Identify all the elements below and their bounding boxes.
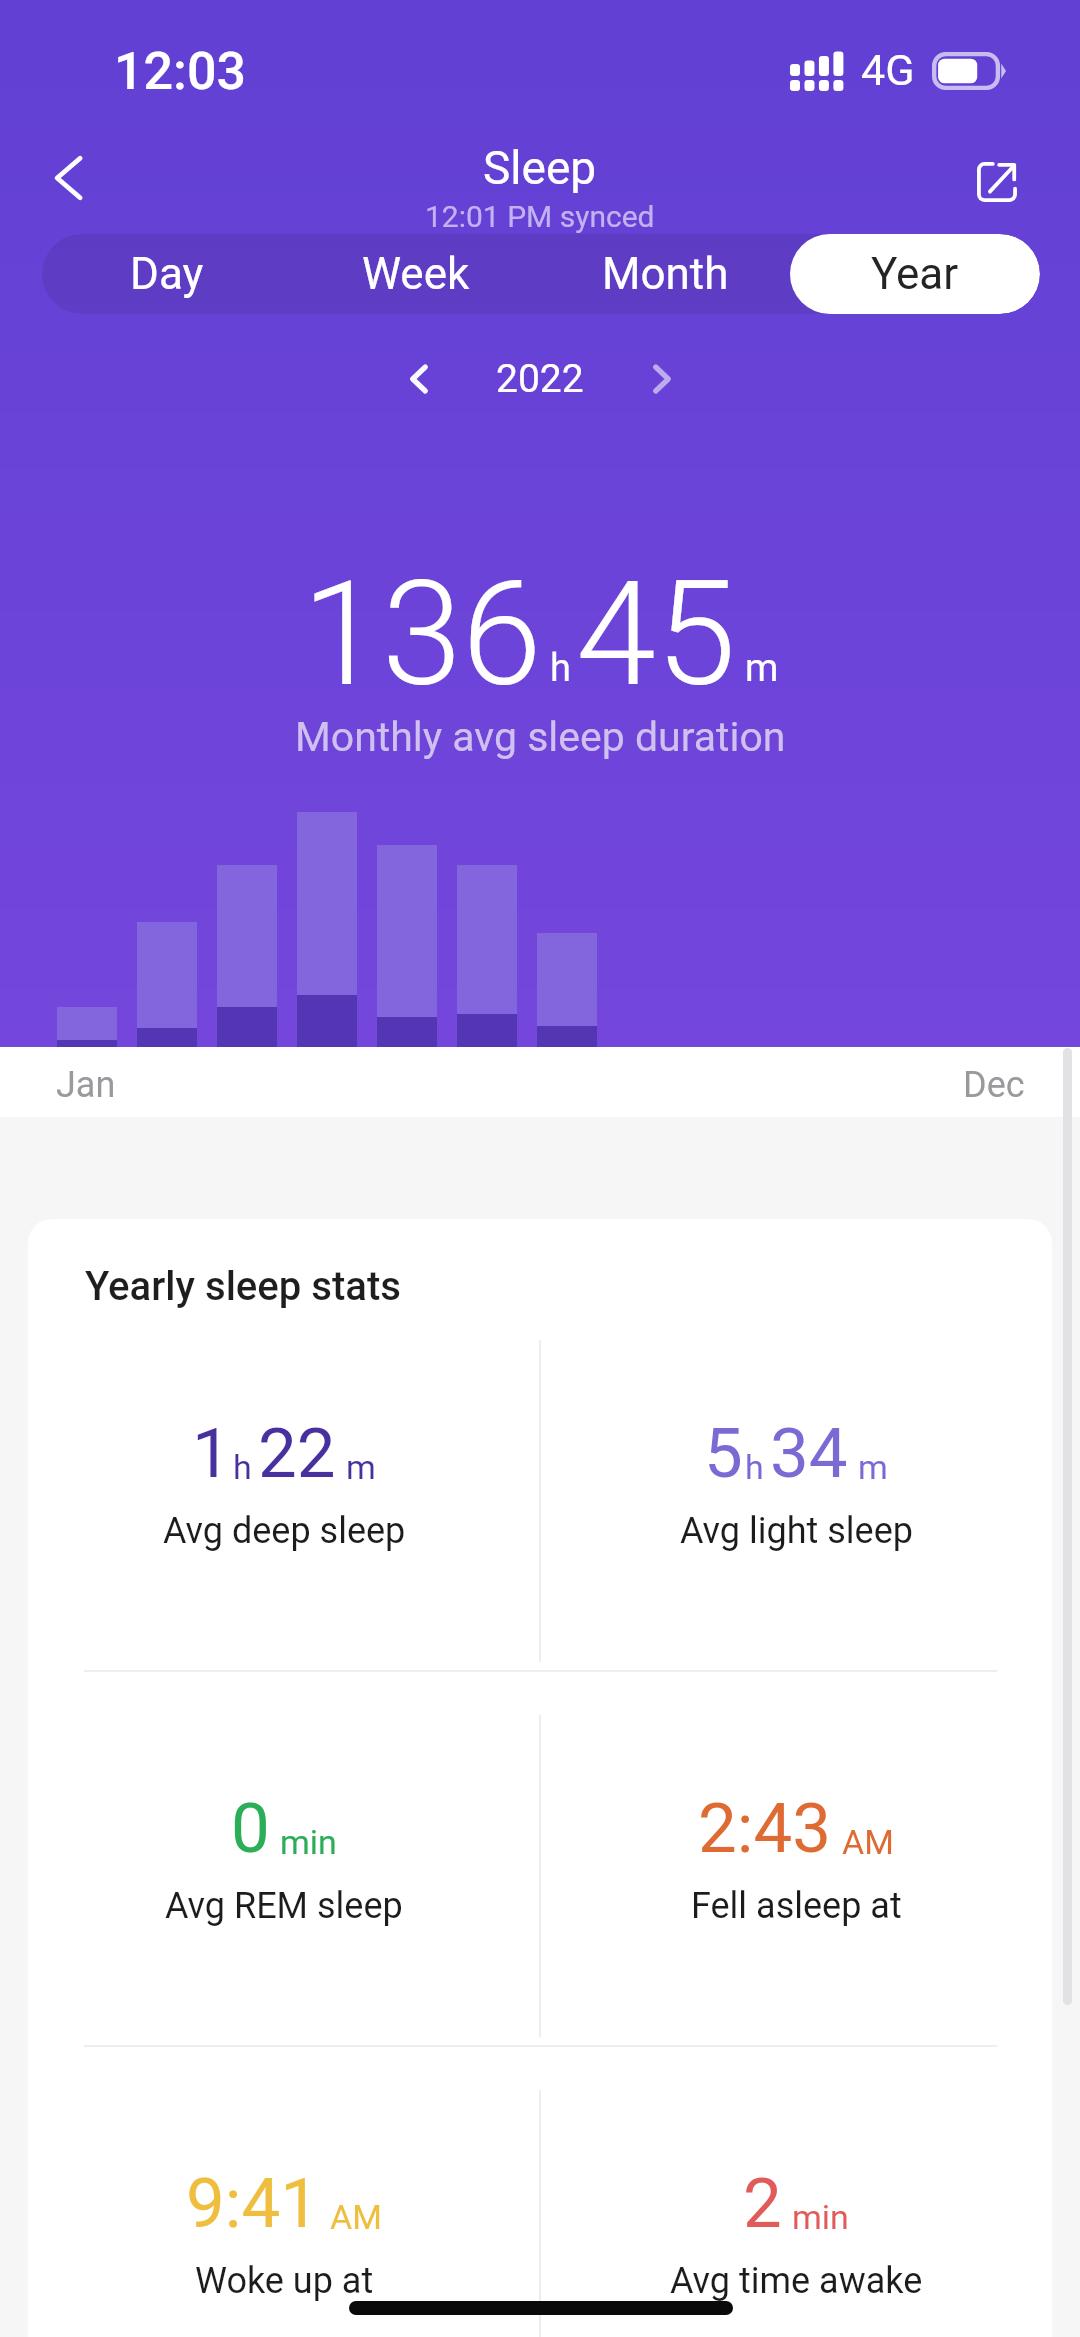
staticText: h	[550, 646, 571, 691]
staticText: Dec	[963, 1064, 1025, 1106]
button[interactable]: Day	[42, 234, 291, 314]
button[interactable]: 1	[28, 1295, 540, 1670]
button[interactable]: 2	[540, 2045, 1052, 2337]
button[interactable]: Back	[30, 138, 110, 218]
staticText: m	[858, 1447, 888, 1487]
staticText: Avg deep sleep	[163, 1510, 406, 1552]
staticText: Woke up at	[195, 2260, 374, 2302]
staticText: min	[792, 2197, 849, 2237]
button[interactable]: Share	[958, 143, 1036, 221]
staticText: Day	[130, 248, 204, 300]
staticText: Sleep	[483, 141, 597, 195]
staticText: Avg REM sleep	[165, 1885, 403, 1927]
staticText: Fell asleep at	[691, 1885, 902, 1927]
button[interactable]: 5	[540, 1295, 1052, 1670]
staticText: Avg time awake	[670, 2260, 923, 2302]
staticText: 4G	[861, 45, 915, 95]
staticText: 12:01 PM synced	[425, 199, 655, 234]
staticText: 34	[770, 1413, 848, 1494]
staticText: m	[745, 646, 779, 691]
staticText: h	[233, 1447, 252, 1487]
staticText: h	[745, 1447, 764, 1487]
staticText: 9:41	[186, 2163, 320, 2244]
staticText: Month	[602, 248, 729, 300]
staticText: 5	[704, 1413, 743, 1494]
staticText: 2:43	[698, 1788, 832, 1869]
staticText: 136	[302, 550, 542, 719]
button[interactable]: 2:43	[540, 1670, 1052, 2045]
staticText: Jan	[56, 1064, 116, 1106]
staticText: Avg light sleep	[680, 1510, 913, 1552]
staticText: m	[346, 1447, 376, 1487]
staticText: 2022	[496, 356, 584, 402]
staticText: Week	[362, 248, 470, 300]
button[interactable]: Next year	[622, 339, 702, 419]
staticText: 45	[576, 550, 736, 719]
staticText: Monthly avg sleep duration	[295, 713, 786, 761]
button[interactable]: 0	[28, 1670, 540, 2045]
button[interactable]: Previous year	[379, 339, 459, 419]
staticText: 22	[258, 1413, 336, 1494]
button[interactable]: Month	[540, 234, 790, 314]
staticText: 2	[743, 2163, 782, 2244]
staticText: AM	[330, 2197, 382, 2237]
staticText: 0	[231, 1788, 270, 1869]
staticText: Year	[871, 248, 959, 300]
button[interactable]: Week	[291, 234, 540, 314]
staticText: Yearly sleep stats	[85, 1263, 401, 1310]
staticText: min	[280, 1822, 337, 1862]
button[interactable]: Year	[790, 234, 1040, 314]
staticText: 12:03	[114, 41, 247, 102]
button[interactable]: 9:41	[28, 2045, 540, 2337]
staticText: AM	[842, 1822, 894, 1862]
staticText: 1	[192, 1413, 231, 1494]
